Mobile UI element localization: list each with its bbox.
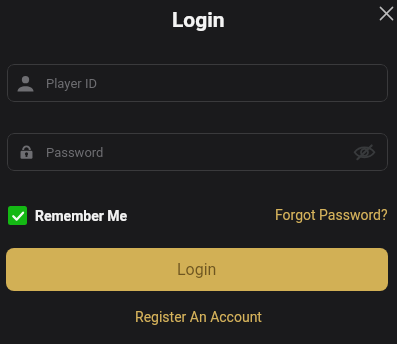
button[interactable]: Login [6,248,388,291]
staticText: Forgot Password? [275,207,388,223]
staticText: Player ID [46,76,97,91]
button[interactable]: Register An Account [135,309,262,325]
staticText: Login [172,8,225,33]
button[interactable]: Password [7,133,388,171]
staticText: Password [46,145,104,160]
button[interactable]: Show password [348,136,380,168]
staticText: Register An Account [135,309,262,325]
staticText: Remember Me [35,208,128,224]
staticText: Login [177,260,217,279]
button[interactable]: Close [373,0,397,26]
button[interactable]: Player ID [7,64,388,102]
button[interactable]: Forgot Password? [275,207,388,223]
button[interactable]: Remember Me [8,206,128,225]
